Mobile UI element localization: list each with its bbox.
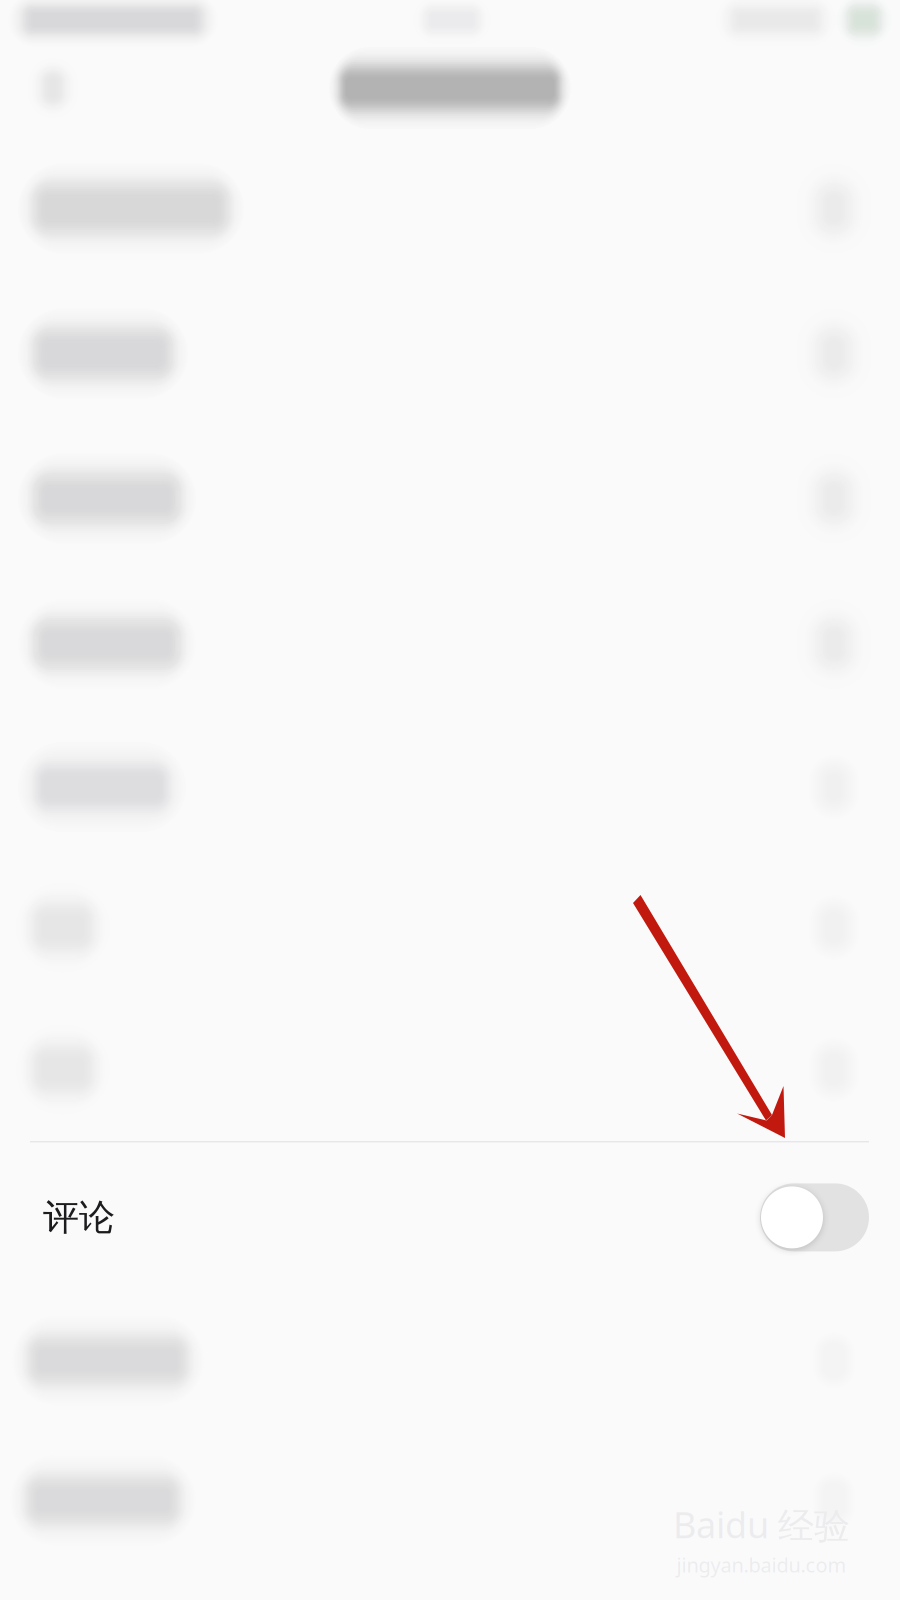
button[interactable] (0, 1428, 900, 1572)
button[interactable]: Back (10, 45, 96, 131)
staticText: Baidu 经验 (673, 1500, 850, 1548)
staticText: jingyan.baidu.com (676, 1551, 846, 1578)
button[interactable] (0, 998, 900, 1141)
staticText: 评论 (43, 1195, 115, 1239)
button[interactable] (0, 1292, 900, 1428)
button[interactable] (0, 717, 900, 857)
button[interactable] (0, 136, 900, 281)
button[interactable] (0, 857, 900, 998)
button[interactable]: 评论 (0, 1142, 900, 1292)
button[interactable] (0, 426, 900, 571)
button[interactable] (0, 281, 900, 426)
button[interactable] (0, 571, 900, 717)
